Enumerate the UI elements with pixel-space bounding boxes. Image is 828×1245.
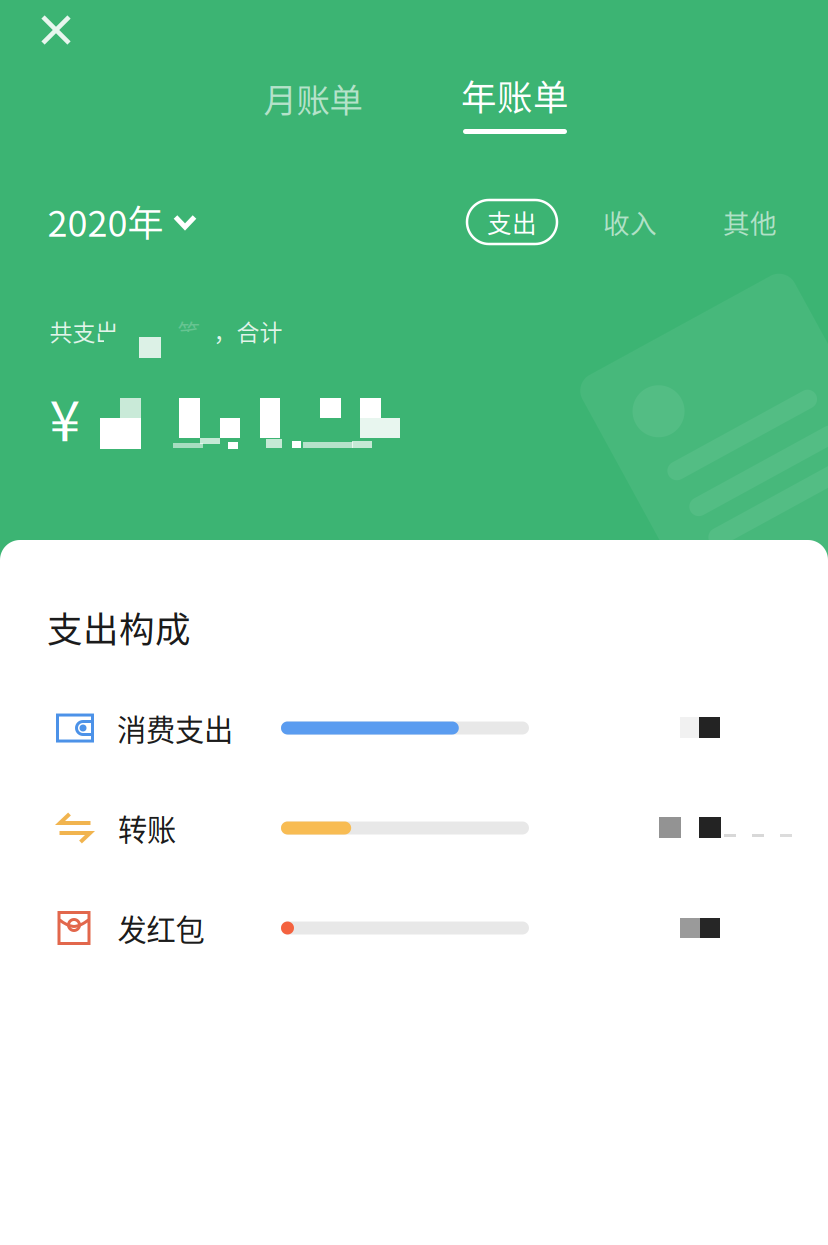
button[interactable]: 消费支出 — [0, 678, 828, 778]
button[interactable]: 其他 — [705, 200, 795, 244]
staticText: 笔 — [177, 314, 200, 348]
button[interactable]: 发红包 — [0, 878, 828, 978]
staticText: 消费支出 — [117, 707, 233, 749]
staticText: 其他 — [723, 203, 777, 241]
staticText: 发红包 — [117, 907, 204, 949]
staticText: 共支出 — [49, 314, 118, 348]
staticText: 支出 — [487, 204, 537, 240]
button[interactable]: 2020年 — [50, 187, 250, 253]
button[interactable]: 转账 — [0, 778, 828, 878]
button[interactable]: 年账单 — [435, 59, 595, 155]
button[interactable]: Close — [12, 0, 100, 74]
staticText: 转账 — [118, 807, 176, 849]
staticText: ¥ — [49, 377, 80, 457]
button[interactable]: 月账单 — [238, 65, 388, 131]
button[interactable]: 支出 — [467, 200, 557, 244]
staticText: ，合计 — [213, 314, 282, 348]
staticText: 年账单 — [461, 69, 569, 121]
staticText: 支出构成 — [47, 601, 191, 653]
staticText: 2020年 — [47, 195, 163, 247]
button[interactable]: 收入 — [585, 200, 675, 244]
staticText: 收入 — [603, 203, 657, 241]
staticText: 月账单 — [263, 74, 362, 122]
